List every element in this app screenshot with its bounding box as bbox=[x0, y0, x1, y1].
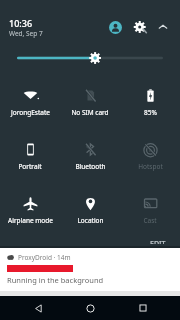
staticText: Location bbox=[77, 216, 104, 225]
staticText: Cast bbox=[143, 216, 157, 225]
button[interactable]: Home bbox=[75, 296, 105, 320]
button[interactable]: Airplane mode bbox=[0, 183, 60, 237]
button[interactable]: Location bbox=[60, 183, 120, 237]
button[interactable]: Back bbox=[23, 296, 53, 320]
staticText: EDIT bbox=[150, 239, 166, 244]
staticText: Hotspot bbox=[138, 162, 163, 171]
staticText: JorongEstate bbox=[11, 108, 50, 117]
button[interactable]: Portrait bbox=[0, 129, 60, 183]
button[interactable]: JorongEstate bbox=[0, 75, 60, 129]
staticText: ProxyDroid · 14m bbox=[18, 253, 71, 262]
button[interactable]: Cast bbox=[120, 183, 180, 237]
button[interactable]: EDIT bbox=[146, 237, 170, 246]
staticText: No SIM card bbox=[71, 108, 109, 117]
button[interactable]: No SIM card bbox=[60, 75, 120, 129]
button[interactable]: Brightness bbox=[17, 49, 163, 67]
staticText: 85% bbox=[144, 108, 157, 117]
staticText: 10:36 bbox=[9, 17, 33, 29]
staticText: Wed, Sep 7 bbox=[9, 29, 43, 38]
button[interactable]: ProxyDroid · 14m bbox=[0, 248, 180, 291]
button[interactable]: 85% bbox=[120, 75, 180, 129]
staticText: Portrait bbox=[18, 162, 42, 171]
button[interactable]: Settings bbox=[130, 17, 150, 37]
button[interactable]: Bluetooth bbox=[60, 129, 120, 183]
button[interactable]: Hotspot bbox=[120, 129, 180, 183]
staticText: Bluetooth bbox=[75, 162, 106, 171]
button[interactable]: Recent apps bbox=[128, 296, 158, 320]
staticText: Airplane mode bbox=[8, 216, 53, 225]
staticText: Running in the background bbox=[7, 275, 104, 285]
button[interactable]: Collapse bbox=[154, 18, 172, 36]
button[interactable]: User bbox=[105, 17, 125, 37]
